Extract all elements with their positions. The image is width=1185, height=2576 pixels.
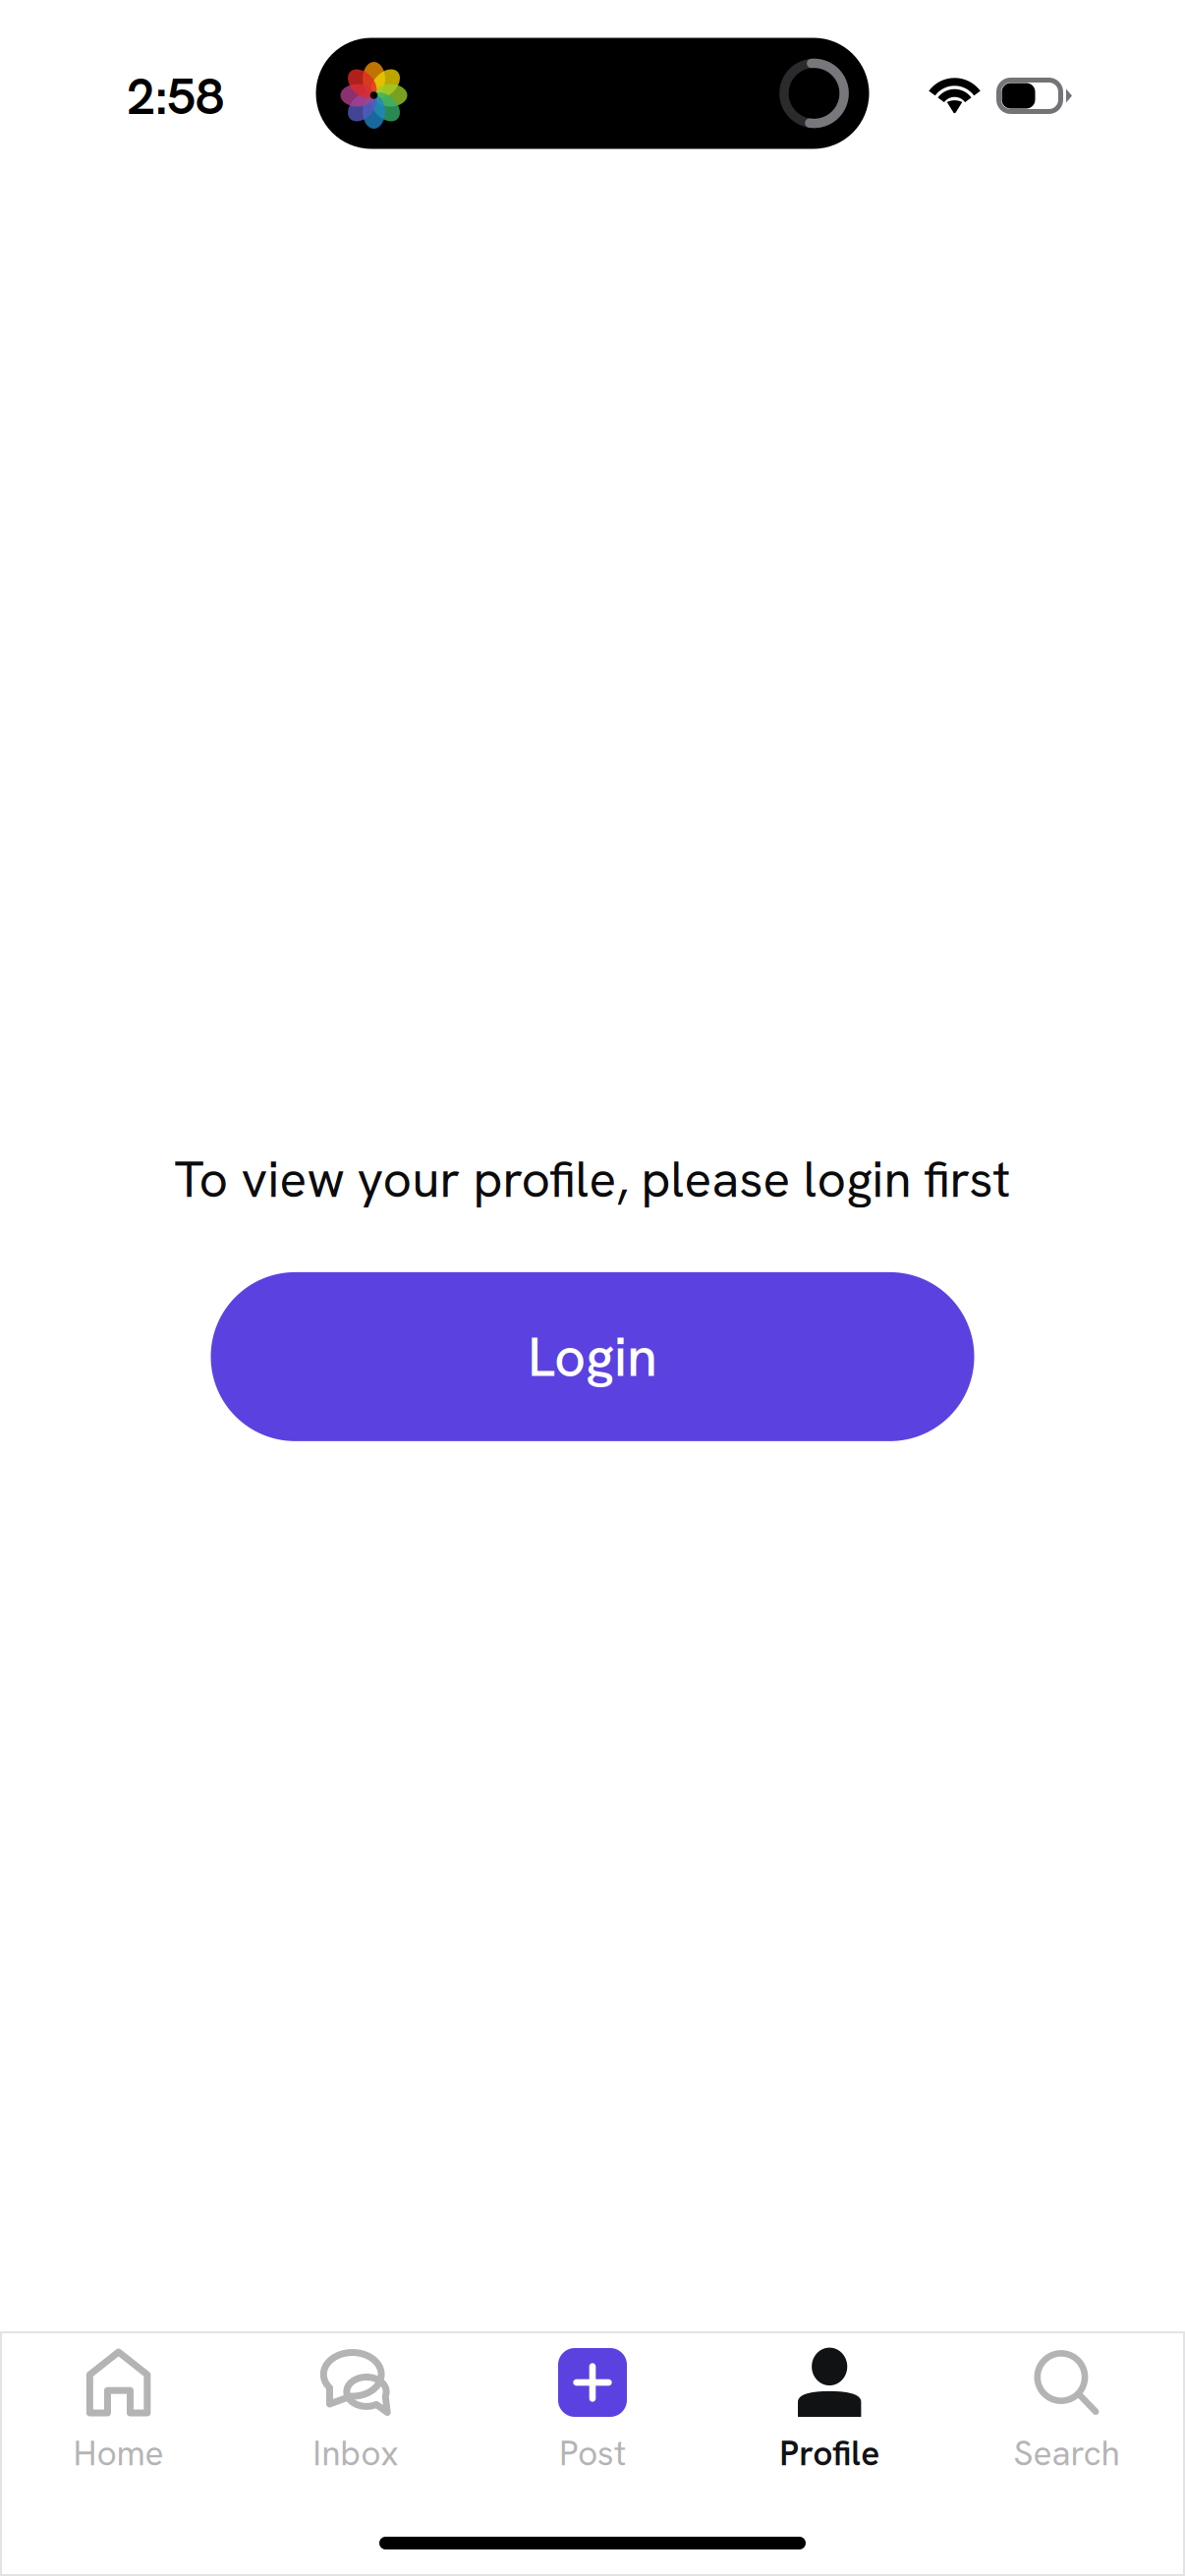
button[interactable]: Home [0, 2331, 237, 2482]
staticText: 2:58 [127, 63, 224, 130]
staticText: Post [559, 2431, 626, 2476]
button[interactable]: Post [474, 2331, 711, 2482]
staticText: To view your profile, please login first [174, 1147, 1011, 1212]
staticText: Search [1013, 2431, 1120, 2476]
staticText: Home [73, 2431, 164, 2476]
staticText: Profile [779, 2431, 880, 2476]
staticText: Login [528, 1321, 657, 1393]
button[interactable]: Profile [711, 2331, 948, 2482]
button[interactable]: Search [948, 2331, 1185, 2482]
button[interactable]: Login [211, 1272, 974, 1441]
button[interactable]: Inbox [237, 2331, 474, 2482]
staticText: Inbox [313, 2431, 398, 2476]
